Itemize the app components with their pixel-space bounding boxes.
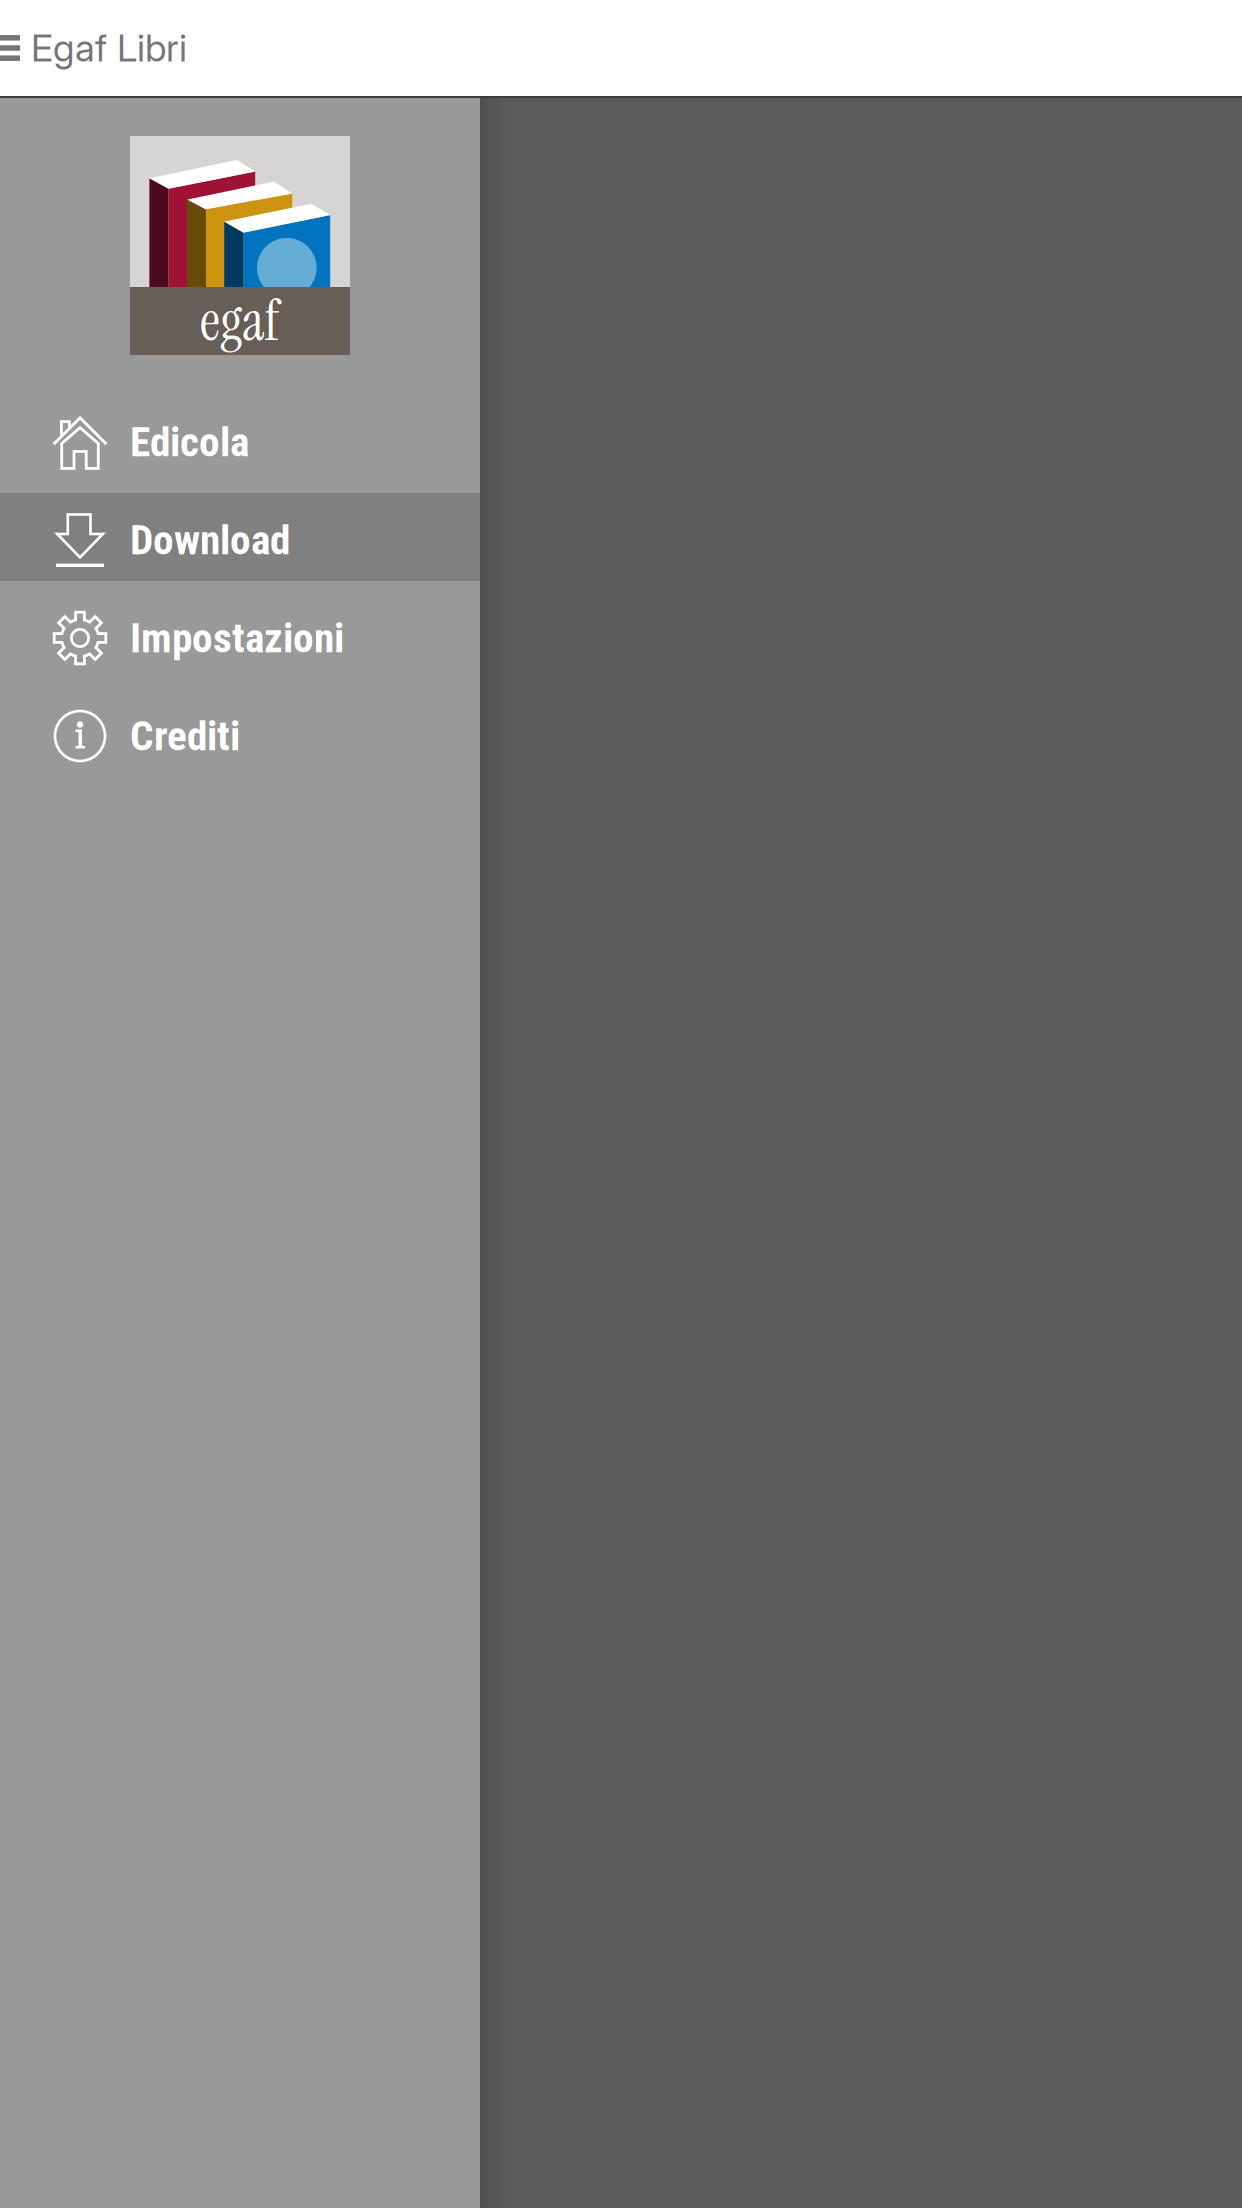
staticText: Crediti [130, 712, 240, 760]
button[interactable]: Edicola [0, 393, 480, 491]
staticText: Download [130, 516, 290, 564]
staticText: egaf [200, 285, 280, 357]
staticText: Impostazioni [130, 614, 344, 662]
staticText: Egaf Libri [31, 25, 187, 71]
button[interactable]: Download [0, 491, 480, 589]
button[interactable]: Menu [0, 0, 20, 96]
button[interactable]: Crediti [0, 687, 480, 785]
staticText: Edicola [130, 418, 249, 466]
button[interactable]: Impostazioni [0, 589, 480, 687]
